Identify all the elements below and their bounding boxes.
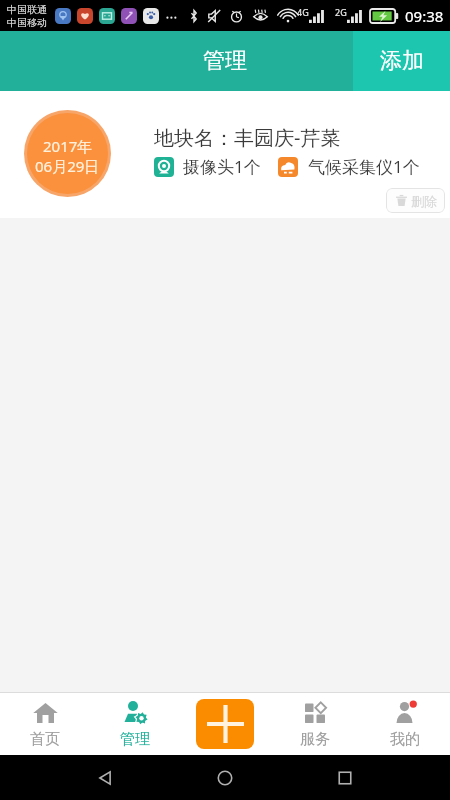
- staticText: 我的: [390, 730, 420, 749]
- staticText: 中国联通: [7, 3, 47, 16]
- staticText: 4G: [297, 6, 309, 18]
- button[interactable]: 我的: [360, 693, 450, 755]
- button[interactable]: Back: [90, 763, 120, 793]
- button[interactable]: 管理: [90, 693, 180, 755]
- staticText: 2017年: [43, 136, 93, 156]
- staticText: 管理: [203, 47, 247, 75]
- staticText: 服务: [300, 730, 330, 749]
- staticText: 06月29日: [35, 156, 100, 176]
- button[interactable]: Recents: [330, 763, 360, 793]
- staticText: 添加: [380, 47, 424, 75]
- button[interactable]: 首页: [0, 693, 90, 755]
- staticText: 气候采集仪1个: [308, 155, 420, 178]
- staticText: 地块名：丰园庆-芹菜: [154, 124, 341, 151]
- button[interactable]: Home: [210, 763, 240, 793]
- staticText: 09:38: [405, 6, 444, 26]
- button[interactable]: 2017年: [0, 91, 450, 218]
- button[interactable]: 删除: [386, 188, 445, 213]
- staticText: 管理: [120, 730, 150, 749]
- staticText: 删除: [411, 193, 437, 209]
- button[interactable]: 服务: [270, 693, 360, 755]
- button[interactable]: 添加: [353, 31, 450, 91]
- staticText: 2G: [335, 6, 347, 18]
- staticText: 首页: [30, 730, 60, 749]
- staticText: 摄像头1个: [183, 155, 261, 178]
- button[interactable]: 添加: [196, 699, 254, 749]
- staticText: 中国移动: [7, 16, 47, 29]
